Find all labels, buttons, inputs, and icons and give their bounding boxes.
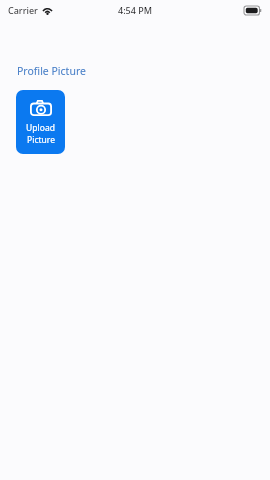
staticText: 4:54 PM: [118, 4, 152, 16]
button[interactable]: Upload Picture: [16, 90, 65, 154]
staticText: Upload: [26, 122, 55, 134]
staticText: Carrier: [8, 4, 38, 16]
staticText: Profile Picture: [17, 64, 86, 78]
staticText: Picture: [27, 134, 55, 146]
